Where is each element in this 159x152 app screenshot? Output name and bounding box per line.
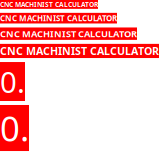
staticText: 0. xyxy=(0,62,25,101)
staticText: 0. xyxy=(0,105,29,151)
staticText: CNC MACHINIST CALCULATOR xyxy=(0,0,98,9)
staticText: CNC MACHINIST CALCULATOR xyxy=(0,44,159,58)
staticText: CNC MACHINIST CALCULATOR xyxy=(0,27,137,40)
staticText: CNC MACHINIST CALCULATOR xyxy=(0,13,117,23)
